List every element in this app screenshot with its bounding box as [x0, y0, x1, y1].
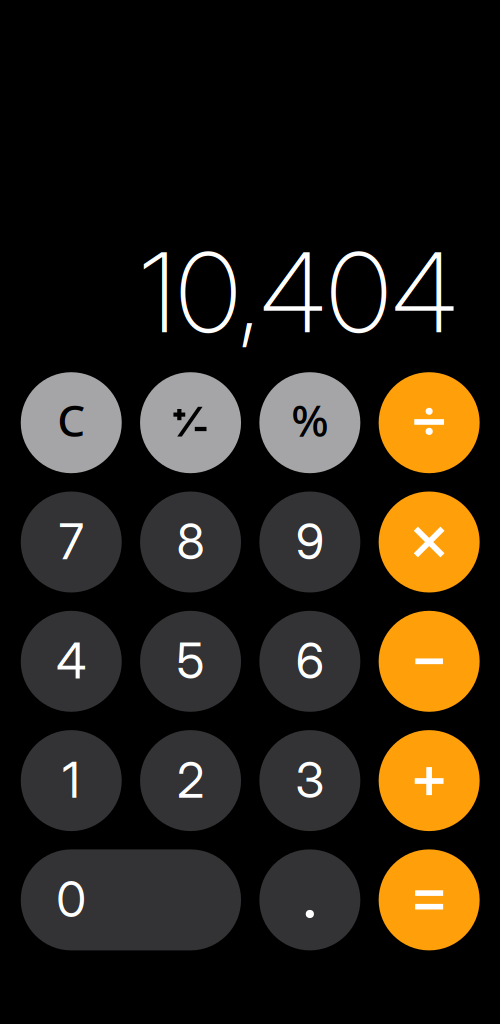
- button[interactable]: Toggle sign: [140, 372, 241, 473]
- button[interactable]: Add: [379, 730, 480, 831]
- staticText: C: [57, 390, 85, 449]
- staticText: 6: [296, 631, 324, 690]
- staticText: 5: [177, 631, 205, 690]
- staticText: 9: [296, 512, 324, 571]
- staticText: 2: [177, 751, 204, 810]
- staticText: 4: [56, 631, 86, 690]
- button[interactable]: Equals: [379, 849, 480, 950]
- button[interactable]: Subtract: [379, 611, 480, 712]
- staticText: 3: [295, 751, 324, 810]
- staticText: %: [291, 390, 328, 449]
- button[interactable]: Divide: [379, 372, 480, 473]
- button[interactable]: 5: [140, 611, 241, 712]
- staticText: 7: [59, 512, 84, 571]
- button[interactable]: Multiply: [379, 491, 480, 592]
- button[interactable]: 0: [21, 849, 241, 950]
- button[interactable]: 4: [21, 611, 122, 712]
- button[interactable]: Decimal point: [259, 849, 360, 950]
- button[interactable]: 2: [140, 730, 241, 831]
- button[interactable]: 7: [21, 491, 122, 592]
- staticText: 0: [56, 870, 86, 929]
- button[interactable]: 8: [140, 491, 241, 592]
- button[interactable]: %: [259, 372, 360, 473]
- button[interactable]: 6: [259, 611, 360, 712]
- button[interactable]: 3: [259, 730, 360, 831]
- button[interactable]: C: [21, 372, 122, 473]
- button[interactable]: 9: [259, 491, 360, 592]
- staticText: 8: [177, 512, 205, 571]
- button[interactable]: 1: [21, 730, 122, 831]
- staticText: 10,404: [140, 226, 457, 359]
- staticText: 1: [62, 751, 80, 810]
